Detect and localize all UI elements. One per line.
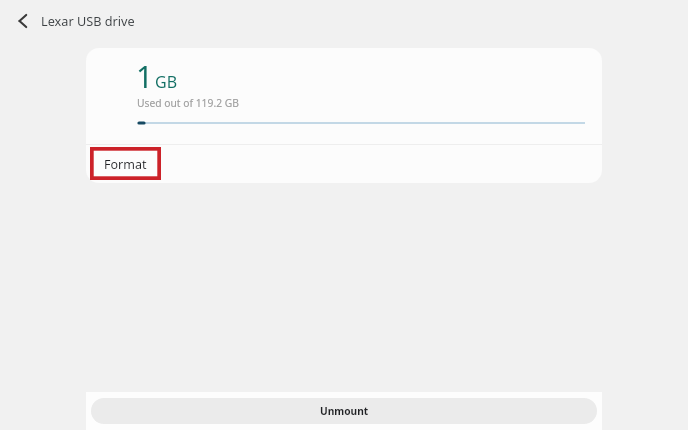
button[interactable]: Unmount bbox=[91, 398, 597, 424]
staticText: 1 bbox=[136, 56, 154, 97]
staticText: GB bbox=[155, 71, 178, 93]
staticText: Unmount bbox=[320, 404, 369, 418]
staticText: Format bbox=[104, 156, 147, 173]
button[interactable]: Format bbox=[86, 145, 602, 183]
staticText: Lexar USB drive bbox=[41, 12, 135, 29]
button[interactable]: Back bbox=[0, 0, 41, 41]
staticText: Used out of 119.2 GB bbox=[137, 96, 239, 110]
